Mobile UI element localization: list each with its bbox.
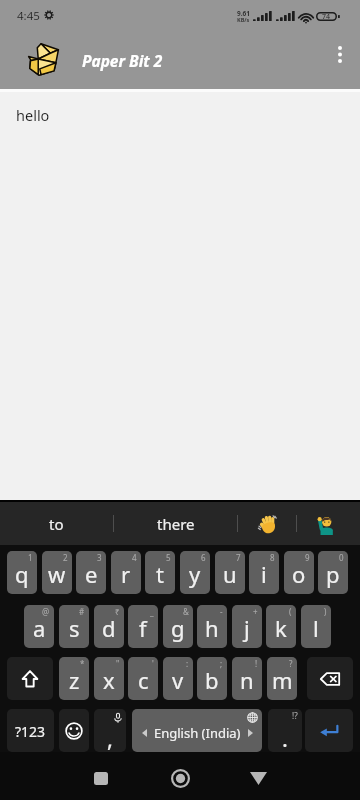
staticText: 3 <box>97 552 102 563</box>
staticText: o <box>292 559 306 589</box>
staticText: ₹ <box>115 606 120 617</box>
button[interactable]: Emoji <box>59 709 89 752</box>
staticText: ? <box>289 658 293 669</box>
staticText: , <box>107 723 113 752</box>
staticText: q <box>15 559 29 589</box>
button[interactable]: there <box>114 502 237 545</box>
staticText: r <box>121 559 131 589</box>
staticText: 9 <box>305 552 310 563</box>
staticText: n <box>240 665 254 695</box>
button[interactable]: j <box>232 605 262 648</box>
staticText: 0 <box>339 552 344 563</box>
button[interactable]: to <box>0 502 113 545</box>
staticText: g <box>171 613 185 643</box>
staticText: 9.61 <box>237 9 250 18</box>
staticText: ) <box>324 606 327 617</box>
button[interactable]: e <box>76 551 106 594</box>
staticText: 4:45 <box>17 8 40 24</box>
button[interactable]: , <box>94 709 126 752</box>
staticText: ( <box>289 606 292 617</box>
button[interactable]: t <box>145 551 175 594</box>
staticText: KB/s <box>237 16 250 23</box>
staticText: f <box>139 613 147 643</box>
staticText: & <box>183 606 189 617</box>
staticText: h <box>205 613 219 643</box>
button[interactable]: ?123 <box>7 709 54 752</box>
button[interactable]: z <box>59 657 89 700</box>
button[interactable]: Enter <box>305 709 353 752</box>
staticText: p <box>326 559 340 589</box>
button[interactable]: Backspace <box>307 657 353 700</box>
button[interactable]: w <box>42 551 72 594</box>
staticText: t <box>156 559 164 589</box>
button[interactable]: Recent apps <box>83 760 119 796</box>
staticText: l <box>313 613 319 643</box>
staticText: 6 <box>201 552 206 563</box>
button[interactable]: f <box>128 605 158 648</box>
staticText: c <box>138 665 149 695</box>
button[interactable]: d <box>94 605 124 648</box>
staticText: @ <box>42 606 50 617</box>
staticText: y <box>189 559 201 589</box>
button[interactable]: c <box>128 657 158 700</box>
button[interactable]: q <box>7 551 37 594</box>
staticText: " <box>116 658 120 669</box>
button[interactable]: p <box>318 551 348 594</box>
staticText: . <box>282 723 288 752</box>
staticText: x <box>103 665 115 695</box>
staticText: k <box>275 613 287 643</box>
staticText: !? <box>292 710 298 721</box>
staticText: * <box>80 658 85 669</box>
button[interactable]: v <box>163 657 193 700</box>
staticText: u <box>223 559 237 589</box>
button[interactable]: . <box>268 709 302 752</box>
button[interactable]: g <box>163 605 193 648</box>
button[interactable]: y <box>180 551 210 594</box>
button[interactable]: r <box>111 551 141 594</box>
staticText: ; <box>220 658 223 669</box>
button[interactable]: Home <box>162 760 198 796</box>
staticText: English (India) <box>154 724 241 742</box>
staticText: 8 <box>270 552 275 563</box>
staticText: ! <box>255 658 258 669</box>
button[interactable]: Back <box>240 760 276 796</box>
button[interactable]: Waving hand emoji <box>238 502 296 545</box>
button[interactable]: o <box>284 551 314 594</box>
staticText: 2 <box>63 552 68 563</box>
button[interactable]: u <box>215 551 245 594</box>
staticText: Paper Bit 2 <box>82 50 163 71</box>
staticText: # <box>79 606 85 617</box>
button[interactable]: Space <box>132 709 262 752</box>
button[interactable]: a <box>24 605 54 648</box>
staticText: i <box>261 559 267 589</box>
button[interactable]: m <box>267 657 297 700</box>
staticText: 74 <box>322 12 331 21</box>
button[interactable]: Shift <box>7 657 53 700</box>
staticText: m <box>272 665 293 695</box>
staticText: + <box>253 606 258 617</box>
staticText: - <box>220 606 223 617</box>
staticText: _ <box>150 606 154 617</box>
staticText: j <box>244 613 250 643</box>
staticText: v <box>172 665 184 695</box>
staticText: 1 <box>28 552 33 563</box>
button[interactable]: More options <box>322 36 358 72</box>
button[interactable]: s <box>59 605 89 648</box>
button[interactable]: b <box>197 657 227 700</box>
staticText: ?123 <box>15 722 46 741</box>
staticText: e <box>85 559 98 589</box>
button[interactable]: i <box>249 551 279 594</box>
button[interactable]: h <box>197 605 227 648</box>
staticText: z <box>69 665 80 695</box>
staticText: 7 <box>236 552 241 563</box>
staticText: 5 <box>166 552 171 563</box>
staticText: d <box>102 613 116 643</box>
button[interactable]: k <box>266 605 296 648</box>
staticText: s <box>69 613 80 643</box>
button[interactable]: x <box>94 657 124 700</box>
staticText: hello <box>16 105 50 125</box>
staticText: : <box>186 658 189 669</box>
button[interactable]: l <box>301 605 331 648</box>
button[interactable]: Person raising hand emoji <box>297 502 359 545</box>
button[interactable]: n <box>232 657 262 700</box>
